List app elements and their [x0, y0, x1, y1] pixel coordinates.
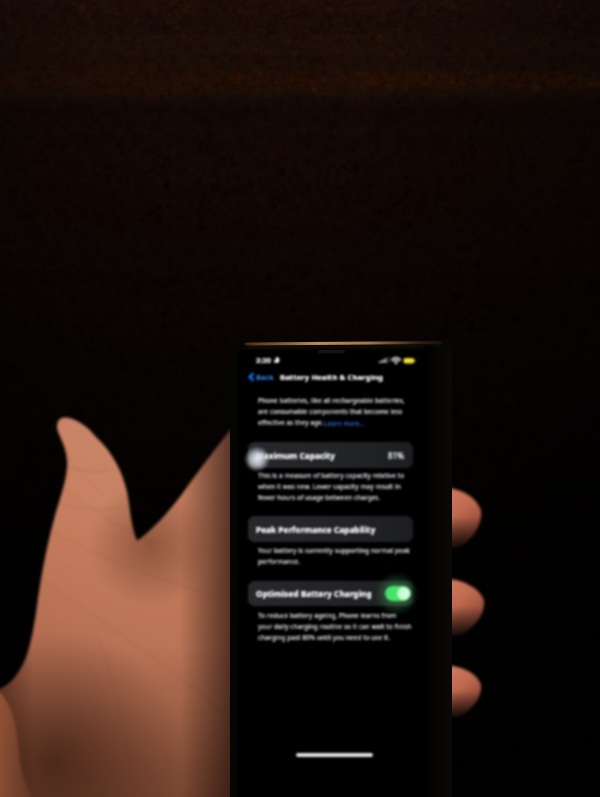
- button[interactable]: Maximum Capacity: [248, 442, 413, 468]
- staticText: Your battery is currently supporting nor…: [258, 546, 410, 566]
- staticText: To reduce battery ageing, Phone learns f…: [258, 611, 412, 642]
- button[interactable]: Peak Performance Capability: [248, 516, 413, 542]
- staticText: Back: [256, 372, 274, 382]
- staticText: 81%: [388, 450, 405, 461]
- button[interactable]: Learn more...: [324, 419, 366, 428]
- button[interactable]: Optimised Battery Charging toggle: [385, 586, 411, 601]
- staticText: Optimised Battery Charging: [256, 588, 372, 599]
- staticText: Maximum Capacity: [256, 450, 336, 461]
- staticText: Peak Performance Capability: [256, 524, 376, 535]
- staticText: Battery Health & Charging: [280, 372, 383, 382]
- button[interactable]: Optimised Battery Charging: [248, 581, 413, 606]
- staticText: Phone batteries, like all rechargeable b…: [258, 396, 405, 427]
- button[interactable]: Back: [248, 372, 274, 382]
- staticText: Learn more...: [324, 419, 366, 428]
- staticText: 2:20: [256, 355, 271, 365]
- staticText: This is a measure of battery capacity re…: [258, 471, 405, 502]
